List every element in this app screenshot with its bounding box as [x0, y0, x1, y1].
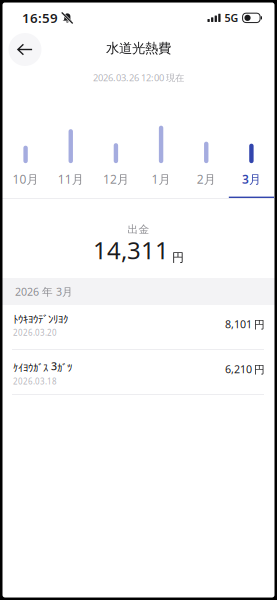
staticText: 12月 — [103, 171, 129, 187]
button[interactable]: 10月 — [3, 86, 48, 199]
staticText: 2026.03.20 — [13, 327, 57, 338]
staticText: 14,311 — [93, 234, 169, 266]
staticText: 2026 年 3月 — [15, 284, 73, 299]
staticText: 円 — [254, 363, 265, 376]
staticText: 6,210 — [225, 362, 252, 376]
staticText: 円 — [254, 318, 265, 331]
staticText: ｹｲﾖｳｶﾞｽ 3ｶﾞﾂ — [13, 359, 72, 373]
button[interactable]: ｹｲﾖｳｶﾞｽ 3ｶﾞﾂ — [0, 350, 277, 394]
staticText: 水道光熱費 — [106, 40, 171, 56]
button[interactable]: ﾄｳｷﾖｳﾃﾞﾝﾘﾖｸ — [0, 305, 277, 349]
button[interactable]: 1月 — [138, 86, 184, 199]
staticText: 8,101 — [225, 317, 252, 331]
button[interactable]: 11月 — [48, 86, 93, 199]
staticText: 2026.03.26 12:00 現在 — [93, 71, 184, 84]
staticText: ﾄｳｷﾖｳﾃﾞﾝﾘﾖｸ — [13, 314, 68, 324]
staticText: 5G — [225, 11, 239, 25]
staticText: 3月 — [242, 171, 261, 187]
button[interactable]: 2月 — [184, 86, 229, 199]
staticText: 11月 — [58, 171, 84, 187]
staticText: 円 — [172, 250, 184, 265]
staticText: 16:59 — [22, 9, 58, 27]
staticText: 10月 — [13, 171, 39, 187]
staticText: 2026.03.18 — [13, 376, 57, 387]
staticText: 2月 — [197, 171, 216, 187]
staticText: 出金 — [127, 223, 149, 236]
button[interactable]: Back — [4, 28, 46, 70]
button[interactable]: 12月 — [93, 86, 138, 199]
staticText: 1月 — [152, 171, 171, 187]
button[interactable]: 3月 — [229, 86, 274, 199]
